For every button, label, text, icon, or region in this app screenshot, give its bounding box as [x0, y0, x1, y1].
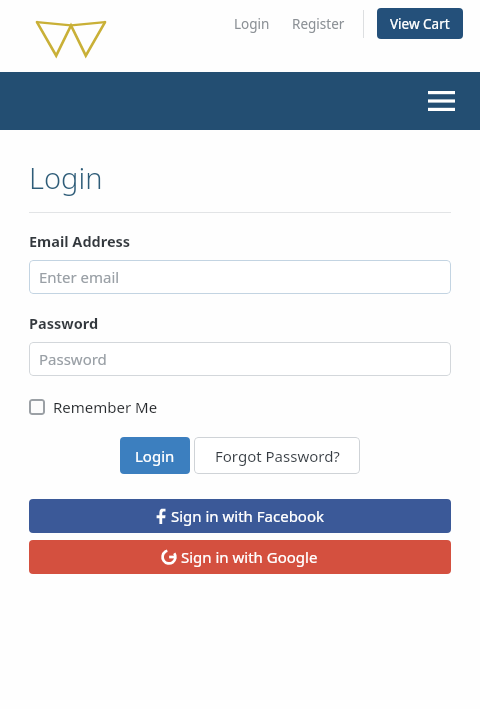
- button[interactable]: Login: [228, 11, 276, 37]
- staticText: Password: [39, 349, 107, 369]
- button[interactable]: Login: [120, 437, 190, 474]
- staticText: Sign in with Facebook: [171, 506, 325, 526]
- button[interactable]: View Cart: [377, 8, 463, 39]
- staticText: Register: [292, 15, 345, 33]
- staticText: Sign in with Google: [181, 547, 318, 567]
- button[interactable]: Enter email: [29, 260, 451, 294]
- staticText: Remember Me: [53, 397, 158, 417]
- button[interactable]: Password: [29, 342, 451, 376]
- staticText: View Cart: [390, 15, 450, 33]
- button[interactable]: Home logo: [34, 6, 108, 60]
- staticText: Login: [135, 446, 175, 466]
- button[interactable]: Open menu: [424, 86, 458, 116]
- staticText: Enter email: [39, 267, 120, 287]
- staticText: Forgot Password?: [215, 446, 340, 466]
- button[interactable]: Sign in with Facebook: [29, 499, 451, 533]
- staticText: Login: [234, 15, 270, 33]
- staticText: Email Address: [29, 231, 131, 251]
- staticText: Login: [29, 158, 103, 197]
- button[interactable]: Register: [286, 11, 351, 37]
- staticText: Password: [29, 313, 99, 333]
- button[interactable]: Remember Me: [29, 395, 158, 419]
- button[interactable]: Forgot Password?: [194, 437, 360, 474]
- button[interactable]: Sign in with Google: [29, 540, 451, 574]
